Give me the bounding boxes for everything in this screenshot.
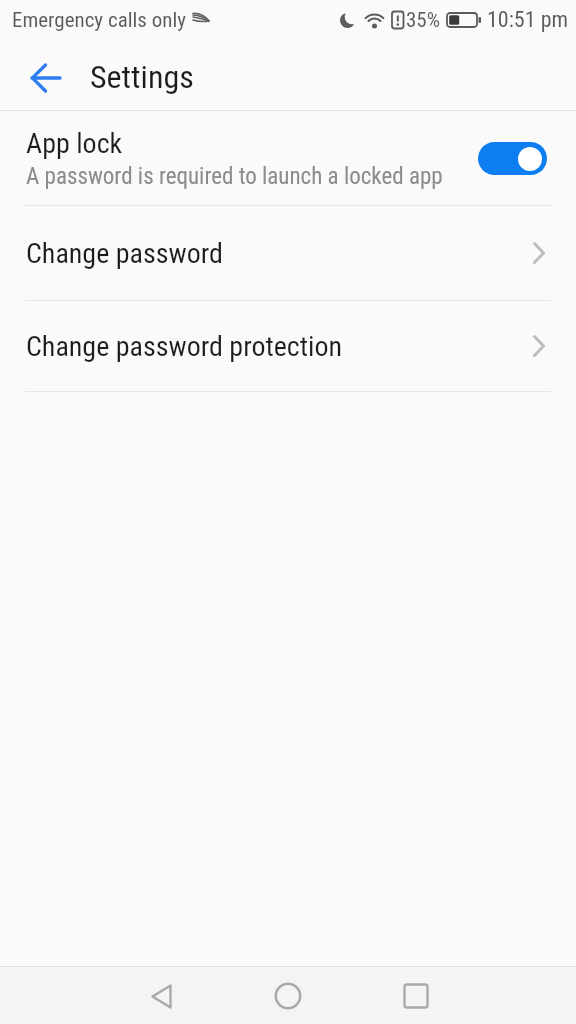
staticText: Emergency calls only: [12, 8, 187, 33]
staticText: App lock: [26, 127, 123, 160]
staticText: 10:51 pm: [487, 7, 569, 33]
button[interactable]: App lock: [0, 111, 576, 205]
staticText: Change password: [26, 237, 223, 270]
staticText: Change password protection: [26, 330, 343, 363]
button[interactable]: [386, 980, 446, 1012]
button[interactable]: [0, 40, 76, 110]
button[interactable]: [131, 980, 191, 1012]
staticText: A password is required to launch a locke…: [26, 163, 443, 190]
button[interactable]: [258, 980, 318, 1012]
staticText: 35%: [406, 8, 441, 33]
button[interactable]: Change password protection: [0, 301, 576, 391]
button[interactable]: Change password: [0, 206, 576, 300]
button[interactable]: [478, 142, 547, 175]
staticText: Settings: [90, 58, 194, 96]
